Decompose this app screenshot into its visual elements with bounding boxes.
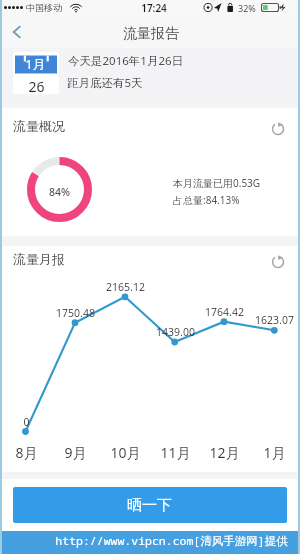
staticText: 32%	[238, 2, 256, 14]
staticText: 流量报告	[123, 25, 179, 43]
staticText: 11月	[160, 443, 191, 462]
staticText: 晒一下	[127, 496, 172, 515]
button[interactable]: Refresh	[269, 253, 287, 271]
staticText: 本月流量已用0.53G	[173, 176, 261, 190]
staticText: 17:24	[141, 1, 167, 15]
staticText: 8月	[15, 443, 38, 462]
staticText: 1月	[263, 443, 286, 462]
staticText: http://www.vipcn.com[清风手游网]提供	[55, 533, 288, 549]
staticText: 9月	[64, 443, 87, 462]
staticText: 中国移动	[26, 2, 62, 13]
staticText: 2165.12	[106, 280, 145, 294]
staticText: 流量概况	[13, 118, 65, 134]
button[interactable]	[13, 487, 287, 523]
staticText: 0	[23, 415, 30, 429]
staticText: 1750.48	[56, 306, 95, 320]
button[interactable]: Back	[0, 15, 34, 48]
staticText: 距月底还有5天	[67, 75, 143, 91]
staticText: 占总量:84.13%	[173, 193, 240, 207]
staticText: 1623.07	[255, 313, 294, 327]
staticText: 10月	[110, 443, 141, 462]
staticText: 12月	[209, 443, 240, 462]
staticText: 1月	[25, 55, 46, 73]
staticText: 84%	[49, 185, 70, 199]
staticText: 26	[28, 77, 45, 96]
button[interactable]: Refresh	[269, 120, 287, 138]
staticText: 流量月报	[13, 251, 65, 267]
staticText: 今天是2016年1月26日	[68, 53, 184, 69]
staticText: 1764.42	[205, 305, 244, 319]
staticText: 1439.00	[156, 325, 195, 339]
